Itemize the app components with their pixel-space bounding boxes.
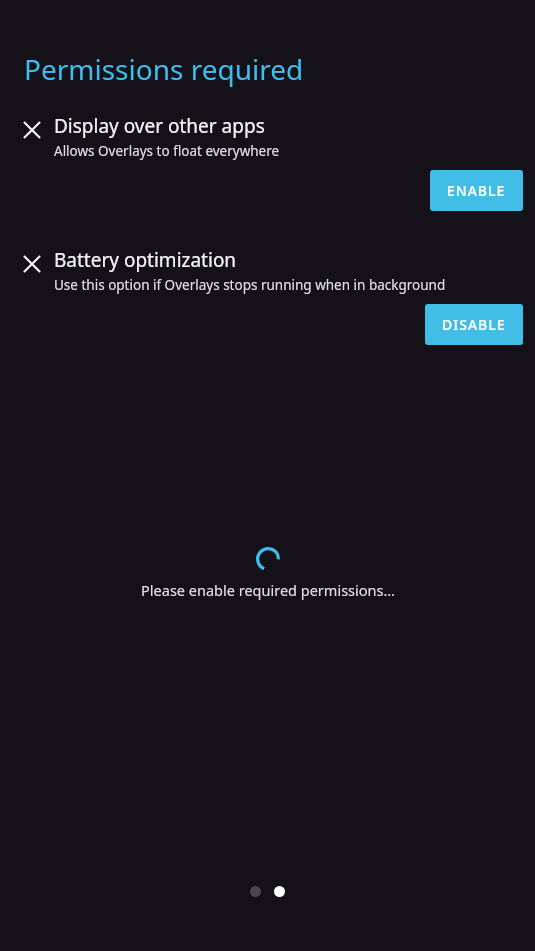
- button[interactable]: DISABLE: [425, 304, 523, 345]
- staticText: Allows Overlays to float everywhere: [54, 142, 280, 160]
- button[interactable]: Page 2, current page: [274, 886, 285, 897]
- staticText: Permissions required: [24, 50, 304, 88]
- staticText: DISABLE: [442, 315, 506, 334]
- staticText: Use this option if Overlays stops runnin…: [54, 276, 446, 294]
- staticText: Battery optimization: [54, 247, 237, 273]
- button[interactable]: ENABLE: [430, 170, 523, 211]
- staticText: Display over other apps: [54, 113, 265, 139]
- staticText: ENABLE: [447, 181, 506, 200]
- button[interactable]: Page 1: [250, 886, 261, 897]
- staticText: Please enable required permissions…: [141, 580, 395, 600]
